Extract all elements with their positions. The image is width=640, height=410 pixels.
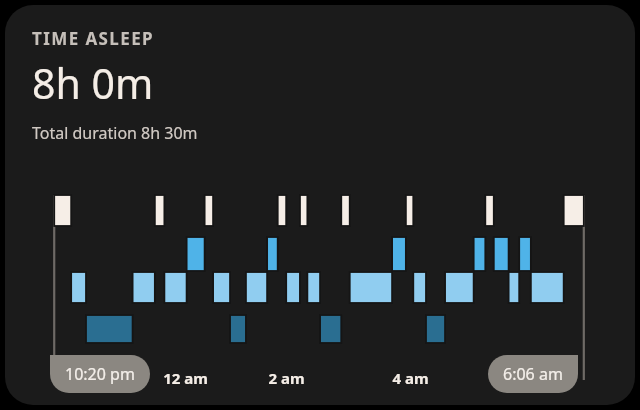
staticText: TIME ASLEEP xyxy=(32,27,155,50)
button[interactable]: 6:06 am xyxy=(488,355,578,393)
staticText: 6:06 am xyxy=(503,363,563,385)
button[interactable]: TIME ASLEEP xyxy=(5,5,635,405)
staticText: 10 pm xyxy=(54,368,100,388)
staticText: 12 am xyxy=(163,368,208,388)
button[interactable]: Sleep stages hypnogram xyxy=(5,180,635,405)
staticText: 4 am xyxy=(392,368,429,388)
staticText: 8h 0m xyxy=(32,55,154,111)
staticText: 10:20 pm xyxy=(65,363,135,385)
staticText: Total duration 8h 30m xyxy=(32,122,198,144)
staticText: 2 am xyxy=(268,368,305,388)
button[interactable]: 10:20 pm xyxy=(50,355,150,393)
